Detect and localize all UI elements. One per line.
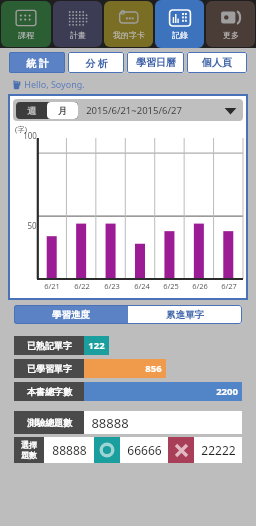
staticText: 88888 (52, 442, 87, 458)
button[interactable]: 累進單字 (128, 305, 242, 324)
staticText: 分 析 (85, 56, 108, 70)
button[interactable]: 分 析 (68, 52, 124, 73)
staticText: 選擇 (21, 440, 37, 450)
staticText: (字) (15, 124, 27, 134)
button[interactable]: 個人頁 (187, 52, 247, 73)
staticText: 本書總字數 (27, 386, 72, 397)
button[interactable]: 記錄 (155, 0, 204, 48)
button[interactable]: Select date range (224, 104, 237, 117)
button[interactable]: 我的字卡 (104, 1, 153, 47)
button[interactable]: 已熟記單字 (14, 336, 242, 355)
staticText: 856 (145, 362, 162, 375)
button[interactable]: 課程 (1, 1, 51, 47)
staticText: 統 計 (26, 56, 49, 70)
staticText: 題數 (21, 450, 37, 460)
staticText: 個人頁 (202, 56, 232, 69)
staticText: 更多 (223, 30, 239, 40)
other: Correct (94, 437, 120, 463)
staticText: 66666 (127, 442, 162, 458)
button[interactable]: 週 (16, 102, 47, 119)
button[interactable]: 月 (47, 102, 78, 119)
staticText: 我的字卡 (113, 30, 145, 40)
staticText: Hello, Soyong. (24, 78, 85, 90)
button[interactable]: 測驗總題數 (14, 411, 242, 434)
staticText: 88888 (91, 414, 129, 432)
button[interactable]: 已學習單字 (14, 359, 242, 378)
staticText: 22222 (201, 442, 236, 458)
staticText: 6/24 (134, 281, 150, 291)
staticText: 100 (23, 130, 37, 141)
staticText: 122 (88, 339, 105, 352)
button[interactable]: 選擇 (14, 437, 242, 463)
staticText: 50 (27, 220, 37, 231)
staticText: 月 (58, 105, 67, 116)
staticText: 6/26 (192, 281, 208, 291)
staticText: 週 (27, 105, 36, 116)
staticText: 計畫 (70, 30, 86, 40)
staticText: 2200 (216, 385, 238, 398)
staticText: 課程 (18, 30, 34, 40)
button[interactable]: 計畫 (53, 1, 102, 47)
button[interactable]: 統 計 (9, 52, 65, 73)
button[interactable]: 本書總字數 (14, 382, 242, 401)
button[interactable]: 學習日曆 (127, 52, 184, 73)
staticText: 測驗總題數 (27, 417, 72, 428)
staticText: 已學習單字 (27, 363, 72, 374)
staticText: 學習進度 (52, 309, 90, 321)
other: Wrong (168, 437, 194, 463)
button[interactable]: 學習進度 (14, 305, 128, 324)
staticText: 6/23 (104, 281, 120, 291)
staticText: 2015/6/21~2015/6/27 (86, 104, 182, 117)
staticText: 學習日曆 (136, 56, 176, 69)
staticText: 6/27 (221, 281, 237, 291)
staticText: 已熟記單字 (27, 340, 72, 351)
staticText: 6/25 (163, 281, 179, 291)
staticText: 6/21 (44, 281, 60, 291)
staticText: 記錄 (172, 30, 188, 40)
staticText: 累進單字 (166, 309, 204, 321)
staticText: 6/22 (74, 281, 90, 291)
button[interactable]: 更多 (206, 1, 255, 47)
